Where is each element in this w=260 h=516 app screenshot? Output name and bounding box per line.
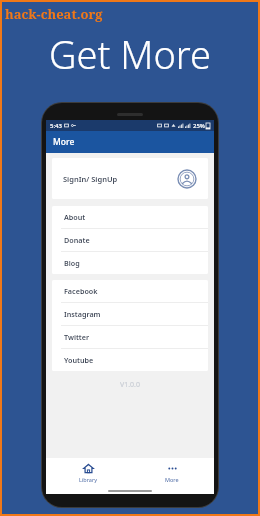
staticText: SignIn/ SignUp: [63, 174, 118, 184]
staticText: V1.0.0: [120, 380, 140, 390]
staticText: Donate: [64, 235, 90, 245]
staticText: Library: [79, 476, 98, 483]
button[interactable]: Instagram: [52, 303, 208, 325]
staticText: More: [53, 136, 75, 148]
button[interactable]: Facebook: [52, 280, 208, 302]
staticText: Instagram: [64, 309, 101, 319]
staticText: hack-cheat.org: [5, 5, 103, 23]
staticText: Facebook: [64, 286, 98, 296]
button[interactable]: Youtube: [52, 349, 208, 371]
button[interactable]: About: [52, 206, 208, 228]
button[interactable]: Library: [46, 458, 130, 487]
button[interactable]: SignIn/ SignUp: [52, 158, 208, 199]
button[interactable]: Twitter: [52, 326, 208, 348]
staticText: Get More: [49, 28, 212, 80]
staticText: Twitter: [64, 332, 90, 342]
button[interactable]: Donate: [52, 229, 208, 251]
button[interactable]: More: [130, 458, 214, 487]
staticText: Blog: [64, 258, 80, 268]
staticText: 25%: [193, 122, 205, 130]
staticText: Youtube: [64, 355, 94, 365]
button[interactable]: Blog: [52, 252, 208, 274]
staticText: More: [165, 476, 179, 483]
staticText: 5:43: [50, 122, 62, 130]
staticText: About: [64, 212, 86, 222]
